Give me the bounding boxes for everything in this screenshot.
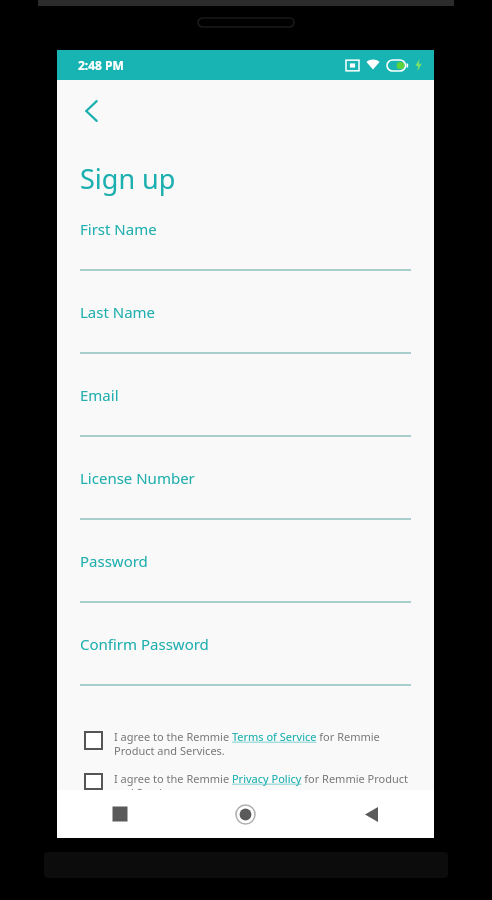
button[interactable]: I agree to the Remmie Privacy Policy for… [57,771,434,790]
button[interactable]: I agree to the Remmie Terms of Service f… [57,729,434,758]
button[interactable]: Password [57,551,434,634]
staticText: License Number [80,468,195,488]
staticText: First Name [80,219,157,239]
button[interactable]: Back [308,790,434,838]
button[interactable]: First Name [57,219,434,302]
button[interactable]: Recents [57,790,182,838]
staticText: I agree to the Remmie Privacy Policy for… [114,771,414,790]
staticText: I agree to the Remmie Terms of Service f… [114,729,414,758]
button[interactable]: Last Name [57,302,434,385]
button[interactable]: Confirm Password [57,634,434,717]
staticText: 2:48 PM [78,57,124,73]
staticText: Confirm Password [80,634,209,654]
staticText: Email [80,385,119,405]
staticText: Last Name [80,302,156,322]
button[interactable]: Back [71,90,113,132]
staticText: Sign up [80,160,176,197]
button[interactable]: License Number [57,468,434,551]
staticText: Password [80,551,148,571]
button[interactable]: Home [182,790,308,838]
button[interactable]: Email [57,385,434,468]
